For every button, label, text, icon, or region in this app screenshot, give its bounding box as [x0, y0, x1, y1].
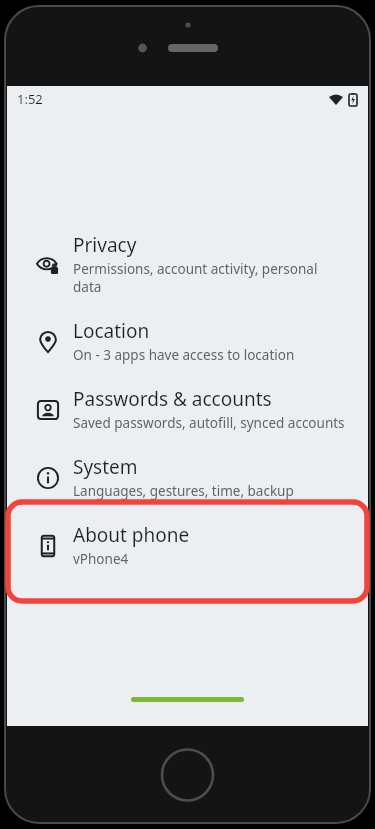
- staticText: Privacy: [73, 232, 137, 258]
- staticText: Permissions, account activity, personal …: [73, 260, 346, 296]
- button[interactable]: Privacy: [7, 221, 368, 307]
- staticText: 1:52: [17, 90, 43, 108]
- staticText: Saved passwords, autofill, synced accoun…: [73, 414, 345, 432]
- staticText: About phone: [73, 522, 190, 548]
- button[interactable]: About phone: [7, 511, 368, 579]
- staticText: Location: [73, 318, 150, 344]
- button[interactable]: System: [7, 443, 368, 511]
- staticText: Languages, gestures, time, backup: [73, 482, 294, 500]
- staticText: On - 3 apps have access to location: [73, 346, 295, 364]
- button[interactable]: Location: [7, 307, 368, 375]
- button[interactable]: Passwords & accounts: [7, 375, 368, 443]
- staticText: System: [73, 454, 138, 480]
- staticText: vPhone4: [73, 550, 129, 568]
- staticText: Passwords & accounts: [73, 386, 272, 412]
